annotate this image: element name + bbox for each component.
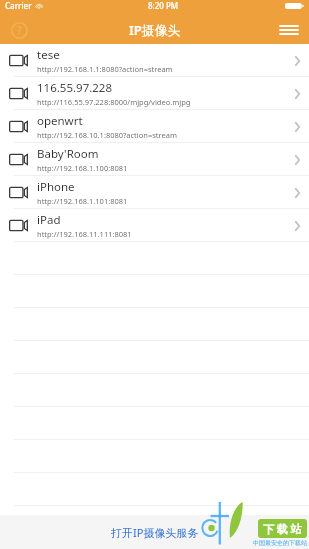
staticText: tese: [37, 47, 60, 63]
staticText: iPad: [37, 212, 61, 228]
button[interactable]: openwrt: [0, 110, 309, 143]
staticText: 下 载 站: [263, 521, 302, 536]
button[interactable]: Help: [8, 19, 30, 41]
button[interactable]: 116.55.97.228: [0, 77, 309, 110]
staticText: http://116.55.97.228:8000/mjpg/video.mjp…: [37, 97, 191, 107]
button[interactable]: Menu: [277, 18, 301, 42]
button[interactable]: iPhone: [0, 176, 309, 209]
button[interactable]: iPad: [0, 209, 309, 242]
staticText: http://192.168.10.1:8080?action=stream: [37, 130, 177, 140]
staticText: ?: [17, 23, 22, 37]
button[interactable]: tese: [0, 44, 309, 77]
button[interactable]: 打开IP摄像头服务: [0, 515, 309, 549]
staticText: http://192.168.1.1:8080?action=stream: [37, 64, 173, 74]
staticText: 中国最安全的下载站: [253, 539, 307, 547]
staticText: IP摄像头: [129, 21, 181, 39]
staticText: 116.55.97.228: [37, 80, 113, 96]
staticText: 打开IP摄像头服务: [111, 525, 199, 540]
staticText: Carrier: [5, 0, 32, 11]
staticText: 8:20 PM: [148, 0, 179, 11]
staticText: http://192.168.11.111:8081: [37, 229, 132, 239]
staticText: http://192.168.1.100:8081: [37, 163, 128, 173]
staticText: http://192.168.1.101:8081: [37, 196, 128, 206]
staticText: Baby'Room: [37, 146, 99, 162]
staticText: openwrt: [37, 113, 83, 129]
button[interactable]: Baby'Room: [0, 143, 309, 176]
staticText: iPhone: [37, 179, 75, 195]
